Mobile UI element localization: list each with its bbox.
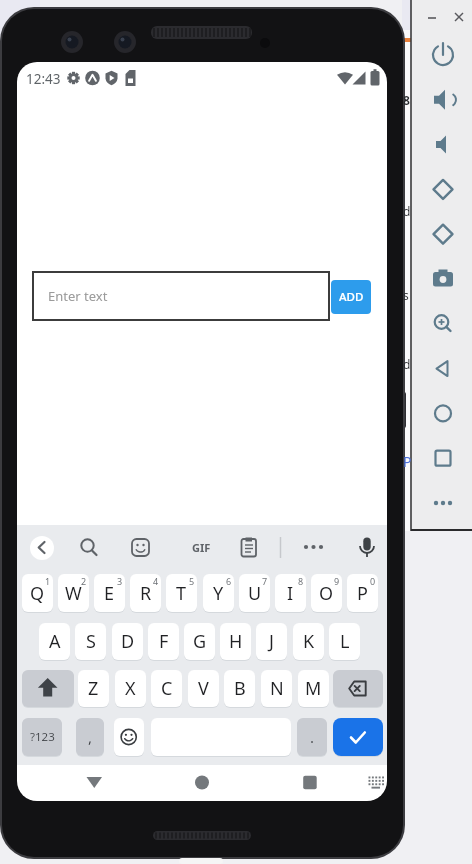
button[interactable] (203, 574, 234, 612)
button[interactable] (293, 623, 324, 660)
staticText: 5 (189, 575, 195, 587)
button[interactable] (329, 623, 360, 660)
staticText: Y (213, 581, 224, 606)
button[interactable] (429, 489, 457, 517)
staticText: R (140, 581, 152, 606)
button[interactable] (429, 86, 457, 114)
staticText: E (104, 581, 115, 606)
button[interactable] (429, 41, 457, 69)
staticText: 7 (262, 575, 268, 587)
button[interactable] (295, 768, 325, 796)
button[interactable] (94, 574, 125, 612)
staticText: . (310, 727, 315, 747)
staticText: H (229, 629, 243, 654)
staticText: Q (30, 581, 45, 606)
button[interactable]: , (76, 718, 104, 756)
button[interactable] (75, 623, 106, 660)
button[interactable] (22, 670, 74, 707)
button[interactable] (429, 220, 457, 248)
staticText: A (49, 629, 61, 654)
button[interactable] (256, 623, 287, 660)
button[interactable] (239, 574, 270, 612)
button[interactable] (114, 718, 144, 756)
staticText: d (403, 203, 411, 217)
button[interactable] (58, 574, 89, 612)
staticText: F (159, 629, 169, 654)
button[interactable]: GIF (187, 539, 215, 556)
staticText: 0 (370, 575, 376, 587)
button[interactable] (298, 670, 329, 707)
button[interactable] (275, 574, 306, 612)
staticText: W (65, 581, 82, 606)
staticText: 12:43 (26, 70, 61, 86)
button[interactable] (22, 574, 53, 612)
button[interactable] (130, 574, 161, 612)
button[interactable] (33, 272, 329, 320)
staticText: 8 (403, 92, 410, 106)
button[interactable]: ADD (331, 280, 371, 314)
staticText: M (305, 676, 322, 701)
staticText: C (161, 676, 173, 701)
button[interactable] (429, 310, 457, 338)
staticText: N (270, 676, 284, 701)
staticText: , (88, 727, 93, 747)
button[interactable] (429, 131, 457, 159)
staticText: d (403, 356, 411, 370)
staticText: 2 (81, 575, 87, 587)
button[interactable] (30, 536, 54, 560)
staticText: P (357, 581, 368, 606)
staticText: G (193, 629, 207, 654)
staticText: K (303, 629, 315, 654)
button[interactable] (188, 670, 219, 707)
button[interactable] (112, 623, 143, 660)
button[interactable] (261, 670, 292, 707)
button[interactable] (429, 399, 457, 427)
staticText: 1 (45, 575, 51, 587)
staticText: V (198, 676, 209, 701)
button[interactable] (333, 718, 383, 756)
button[interactable] (220, 623, 251, 660)
staticText: Enter text (48, 287, 108, 305)
button[interactable] (78, 670, 109, 707)
staticText: J (269, 629, 274, 654)
button[interactable] (151, 670, 182, 707)
button[interactable] (347, 574, 378, 612)
staticText: P (403, 452, 412, 468)
staticText: B (234, 676, 246, 701)
button[interactable] (80, 768, 110, 796)
button[interactable]: ?123 (22, 718, 62, 756)
staticText: T (176, 581, 187, 606)
staticText: 6 (226, 575, 232, 587)
staticText: 4 (153, 575, 159, 587)
staticText: O (319, 581, 334, 606)
staticText: S (86, 629, 96, 654)
button[interactable] (429, 355, 457, 383)
staticText: L (340, 629, 350, 654)
button[interactable] (166, 574, 197, 612)
button[interactable] (39, 623, 70, 660)
staticText: ADD (339, 289, 364, 305)
staticText: X (125, 676, 136, 701)
staticText: 8 (298, 575, 304, 587)
button[interactable] (333, 670, 383, 707)
button[interactable] (148, 623, 179, 660)
staticText: s (403, 287, 409, 301)
button[interactable]: . (297, 718, 327, 756)
staticText: 3 (117, 575, 123, 587)
button[interactable] (115, 670, 146, 707)
button[interactable] (429, 175, 457, 203)
staticText: ?123 (30, 729, 55, 745)
staticText: GIF (192, 540, 211, 555)
button[interactable] (187, 768, 217, 796)
button[interactable] (429, 444, 457, 472)
staticText: I (287, 581, 294, 606)
button[interactable] (224, 670, 255, 707)
staticText: D (121, 629, 135, 654)
button[interactable] (311, 574, 342, 612)
button[interactable] (429, 265, 457, 293)
staticText: U (248, 581, 262, 606)
staticText: 9 (334, 575, 340, 587)
staticText: Z (88, 676, 99, 701)
button[interactable] (184, 623, 215, 660)
